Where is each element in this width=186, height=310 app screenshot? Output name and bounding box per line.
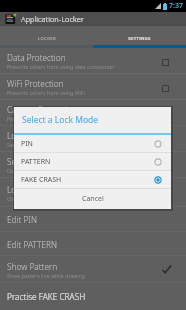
button[interactable]: Security xyxy=(0,152,186,178)
staticText: Prevents others from using camera xyxy=(7,115,93,122)
staticText: Data Protection xyxy=(7,52,66,63)
staticText: Security xyxy=(7,156,37,167)
staticText: LOCKER xyxy=(38,35,56,41)
staticText: Application-Locker xyxy=(21,14,84,24)
button[interactable]: LOCKER xyxy=(0,26,93,48)
staticText: Cancel xyxy=(82,194,104,204)
staticText: Show Pattern xyxy=(7,261,58,272)
button[interactable]: PIN xyxy=(14,135,171,152)
staticText: Prevents others from using data connecti… xyxy=(7,63,115,70)
staticText: Edit PATTERN xyxy=(7,239,57,250)
staticText: FAKE CRASH xyxy=(21,175,154,185)
staticText: Choose how apps are locked xyxy=(7,195,77,202)
button[interactable]: Cancel xyxy=(14,189,171,209)
staticText: Prevents others from using WiFi xyxy=(7,89,85,96)
button[interactable]: FAKE CRASH xyxy=(14,171,171,188)
staticText: PATTERN xyxy=(21,157,154,167)
button[interactable]: Lock Settings xyxy=(0,126,186,152)
button[interactable]: Edit PATTERN xyxy=(0,232,186,256)
button[interactable]: PATTERN xyxy=(14,153,171,170)
staticText: Show pattern line while drawing xyxy=(7,272,85,279)
button[interactable]: Data Protection xyxy=(0,48,186,74)
button[interactable]: Show Pattern xyxy=(0,256,186,283)
staticText: Select a Lock Mode xyxy=(22,114,99,126)
button[interactable]: Lock Mode xyxy=(0,178,186,207)
staticText: SETTINGS xyxy=(128,35,151,41)
button[interactable]: WiFi Protection xyxy=(0,74,186,100)
staticText: Configure security options xyxy=(7,167,72,174)
staticText: Edit PIN xyxy=(7,214,37,225)
button[interactable]: SETTINGS xyxy=(93,26,186,48)
staticText: Lock Mode xyxy=(7,184,49,195)
staticText: Practise FAKE CRASH xyxy=(7,291,86,302)
staticText: WiFi Protection xyxy=(7,78,64,89)
staticText: Camera Protection xyxy=(7,104,78,115)
button[interactable]: Practise FAKE CRASH xyxy=(0,283,186,310)
staticText: Set unlock preferences xyxy=(7,141,63,148)
other: App icon xyxy=(5,13,17,25)
button[interactable]: Edit PIN xyxy=(0,207,186,232)
staticText: PIN xyxy=(21,139,154,149)
button[interactable]: Camera Protection xyxy=(0,100,186,126)
staticText: 7:37 xyxy=(169,1,183,11)
staticText: Lock Settings xyxy=(7,130,57,141)
